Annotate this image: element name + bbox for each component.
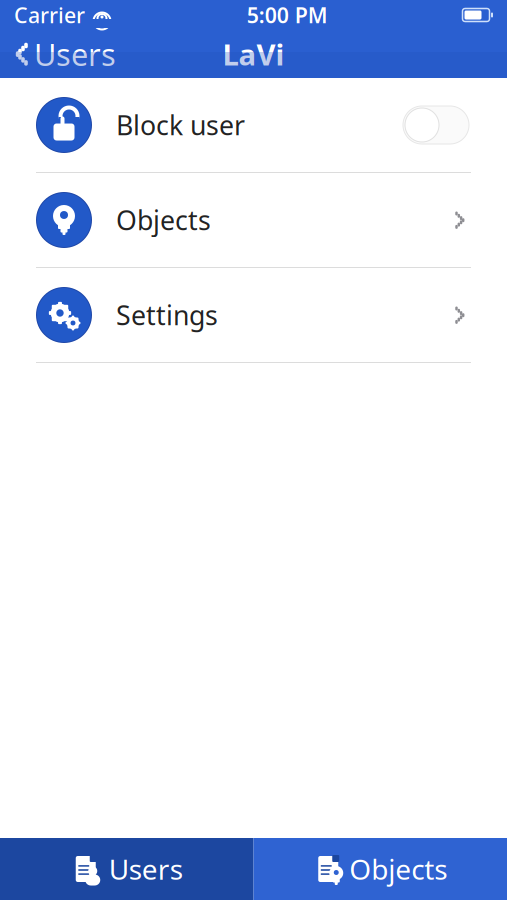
button[interactable]: Back to Users <box>0 30 128 78</box>
staticText: 5:00 PM <box>247 1 328 29</box>
button[interactable]: Block user <box>0 78 507 173</box>
staticText: Objects <box>349 850 447 888</box>
staticText: Objects <box>116 202 211 238</box>
staticText: LaVi <box>222 34 284 73</box>
staticText: Users <box>109 850 183 888</box>
staticText: Carrier <box>14 1 85 29</box>
staticText: Users <box>34 34 116 74</box>
button[interactable]: Block user toggle, off <box>401 103 471 147</box>
staticText: Block user <box>116 107 245 143</box>
button[interactable]: Objects <box>253 838 507 900</box>
button[interactable]: Users <box>0 838 253 900</box>
button[interactable]: Objects <box>0 173 507 268</box>
button[interactable]: Settings <box>0 268 507 363</box>
staticText: Settings <box>116 297 218 333</box>
